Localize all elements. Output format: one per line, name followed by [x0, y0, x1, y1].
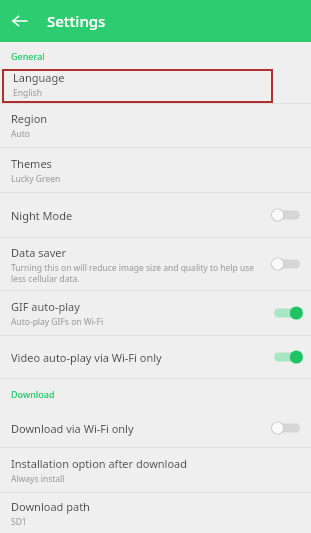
staticText: Auto-play GIFs on Wi-Fi	[11, 316, 104, 328]
button[interactable]: Night Mode	[0, 193, 311, 237]
button[interactable]: Video auto-play via Wi-Fi only	[0, 336, 311, 378]
staticText: Download via Wi-Fi only	[11, 421, 134, 436]
button[interactable]: Data saver	[0, 238, 311, 290]
staticText: Region	[11, 111, 48, 126]
button[interactable]: Region	[0, 104, 311, 147]
button[interactable]: GIF auto-play	[0, 291, 311, 335]
button[interactable]: Download via Wi-Fi only	[0, 409, 311, 447]
staticText: Themes	[11, 156, 52, 171]
staticText: Download	[11, 388, 55, 400]
button[interactable]: Language	[2, 69, 273, 99]
button[interactable]: Back	[0, 1, 40, 41]
staticText: General	[11, 50, 45, 62]
staticText: Turning this on will reduce image size a…	[11, 262, 266, 284]
staticText: Download path	[11, 499, 90, 514]
staticText: Auto	[11, 128, 30, 140]
staticText: SD1	[11, 516, 27, 528]
button[interactable]: Themes	[0, 148, 311, 192]
staticText: Always install	[11, 473, 65, 485]
button[interactable]: Download path	[0, 493, 311, 533]
staticText: English	[13, 87, 42, 99]
staticText: Data saver	[11, 245, 66, 260]
staticText: Lucky Green	[11, 173, 61, 185]
staticText: GIF auto-play	[11, 299, 80, 314]
staticText: Night Mode	[11, 208, 73, 223]
staticText: Installation option after download	[11, 456, 188, 471]
staticText: Settings	[47, 11, 106, 31]
staticText: Video auto-play via Wi-Fi only	[11, 350, 162, 365]
staticText: Language	[13, 70, 65, 85]
button[interactable]: Installation option after download	[0, 448, 311, 492]
